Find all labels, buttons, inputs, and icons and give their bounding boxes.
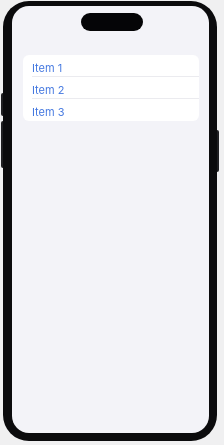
staticText: Item 1 (32, 61, 63, 74)
button[interactable]: Item 1 (23, 55, 199, 77)
button[interactable]: Item 2 (23, 77, 199, 99)
button[interactable]: Item 3 (23, 99, 199, 121)
staticText: Item 2 (32, 83, 65, 96)
staticText: Item 3 (32, 105, 65, 118)
